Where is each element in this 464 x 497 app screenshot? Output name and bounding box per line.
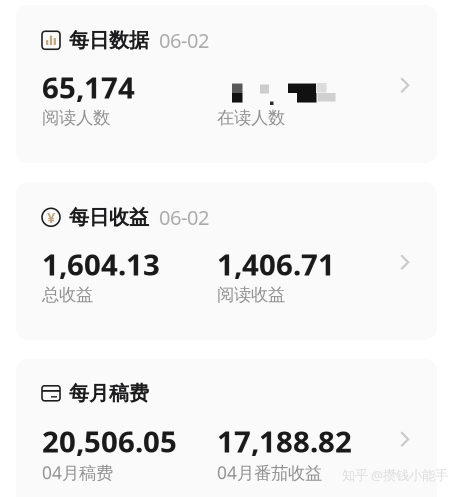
staticText: 每月稿费 [69, 381, 149, 406]
staticText: 阅读人数 [42, 107, 110, 128]
staticText: 06-02 [159, 204, 209, 231]
staticText: 04月番茄收益 [217, 461, 322, 484]
staticText: 1,406.71 [217, 244, 335, 283]
staticText: 17,188.82 [217, 421, 352, 460]
staticText: 知乎 @攒钱小能手 [342, 466, 448, 484]
staticText: 1,604.13 [42, 244, 160, 283]
button[interactable]: 每月稿费 [16, 359, 437, 497]
staticText: ¥ [47, 207, 55, 227]
staticText: 在读人数 [217, 107, 285, 128]
button[interactable]: ¥ [16, 182, 437, 340]
staticText: 总收益 [42, 284, 93, 305]
button[interactable]: 每日数据 [16, 5, 437, 163]
staticText: 65,174 [42, 67, 135, 106]
staticText: 20,506.05 [42, 421, 177, 460]
staticText: 每日数据 [69, 28, 149, 53]
staticText: 06-02 [159, 27, 209, 54]
staticText: 每日收益 [69, 205, 149, 230]
staticText: 04月稿费 [42, 461, 113, 484]
staticText: 阅读收益 [217, 284, 285, 305]
